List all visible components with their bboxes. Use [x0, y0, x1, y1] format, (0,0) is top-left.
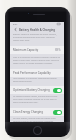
staticText: Optimized Battery Charging [13, 88, 50, 92]
staticText: Battery health is impacted by many facto… [13, 33, 61, 42]
button[interactable]: Back [12, 26, 18, 33]
staticText: 88% [55, 48, 61, 52]
staticText: Maximum Capacity [13, 48, 39, 52]
staticText: This is a measure of battery capacity re… [13, 56, 61, 65]
staticText: Your battery is currently supporting nor… [13, 77, 61, 83]
staticText: Clean Energy Charging [13, 110, 44, 114]
button[interactable]: Maximum Capacity [10, 46, 64, 54]
staticText: To reduce battery aging, iPhone learns f… [13, 95, 61, 104]
staticText: 9:41 [13, 23, 18, 26]
button[interactable]: Peak Performance Capability [10, 69, 64, 77]
staticText: Peak Performance Capability [13, 71, 51, 75]
button[interactable]: Clean Energy Charging [10, 108, 64, 116]
staticText: Battery Health & Charging [19, 28, 55, 32]
staticText: In your region, iPhone tries to reduce y… [13, 117, 61, 123]
button[interactable]: Optimized Battery Charging [10, 86, 64, 94]
